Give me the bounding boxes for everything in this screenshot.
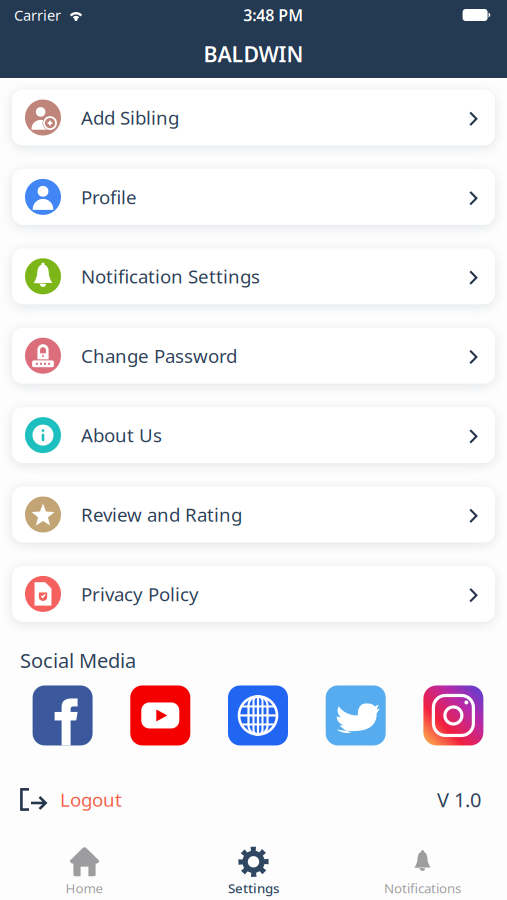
staticText: Add Sibling (81, 105, 179, 130)
staticText: Settings (228, 879, 279, 897)
staticText: V 1.0 (437, 786, 481, 813)
button[interactable]: Facebook (33, 685, 93, 745)
staticText: Profile (81, 184, 137, 209)
staticText: Social Media (20, 647, 136, 673)
button[interactable]: Notification Settings (12, 248, 495, 304)
button[interactable]: Instagram (423, 685, 483, 745)
button[interactable]: Review and Rating (12, 486, 495, 542)
button[interactable]: Profile (12, 169, 495, 225)
staticText: Change Password (81, 343, 237, 368)
staticText: BALDWIN (203, 40, 303, 68)
staticText: 3:48 PM (243, 4, 303, 26)
button[interactable]: Notifications (338, 845, 507, 900)
staticText: Notifications (384, 879, 461, 897)
button[interactable]: Settings (169, 845, 338, 900)
staticText: Notification Settings (81, 264, 260, 289)
button[interactable]: Logout (19, 784, 122, 814)
button[interactable]: YouTube (130, 685, 190, 745)
button[interactable]: Change Password (12, 328, 495, 384)
staticText: Review and Rating (81, 502, 242, 527)
button[interactable]: Add Sibling (12, 89, 495, 145)
button[interactable]: Home (0, 845, 169, 900)
button[interactable]: Privacy Policy (12, 566, 495, 622)
staticText: Home (65, 879, 103, 897)
staticText: Logout (60, 787, 122, 812)
staticText: Carrier (14, 5, 61, 25)
button[interactable]: Website (228, 685, 288, 745)
button[interactable]: About Us (12, 407, 495, 463)
staticText: Privacy Policy (81, 581, 199, 606)
staticText: About Us (81, 423, 162, 447)
button[interactable]: Twitter (326, 685, 386, 745)
